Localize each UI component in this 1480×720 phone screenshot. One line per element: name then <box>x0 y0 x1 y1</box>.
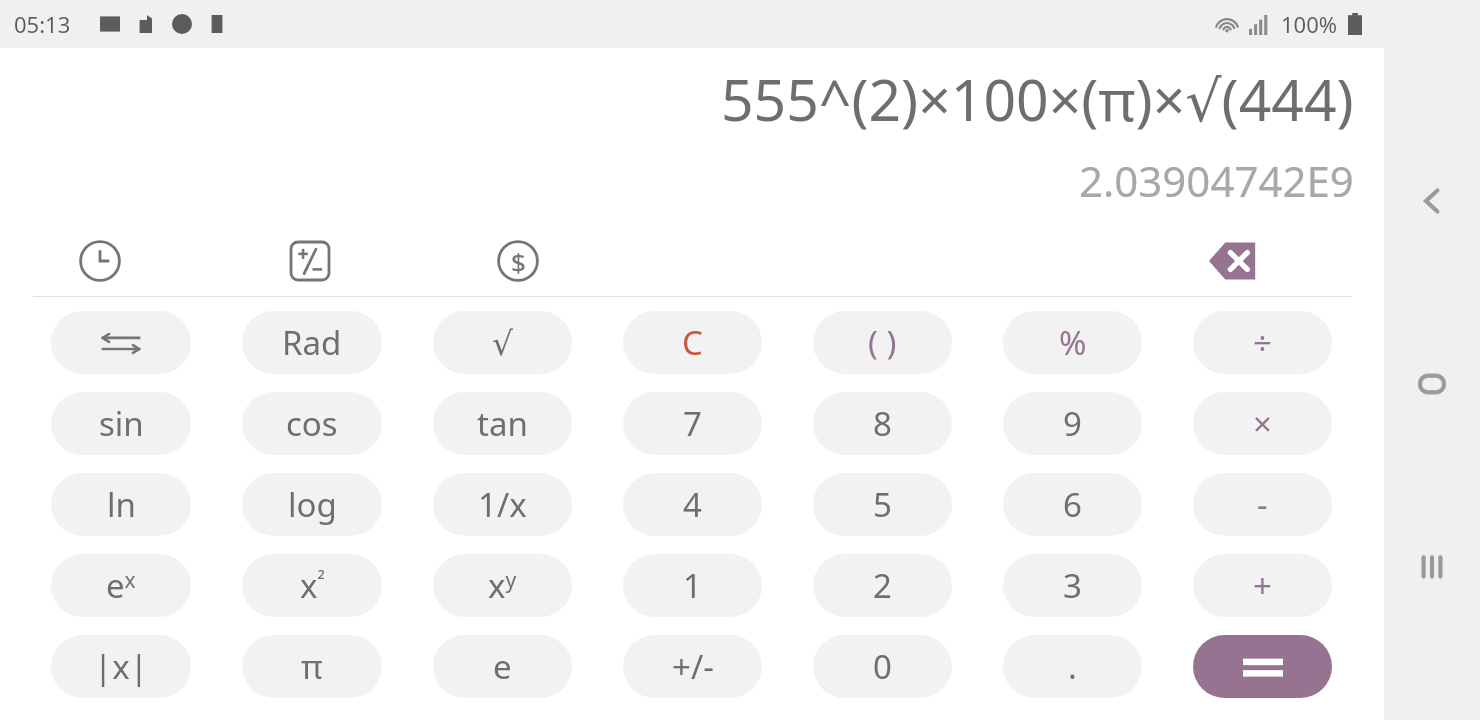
button[interactable]: ex <box>51 554 191 617</box>
staticText: log <box>288 482 337 527</box>
staticText: |x| <box>94 644 148 689</box>
staticText: 05:13 <box>14 9 71 39</box>
staticText: 4 <box>683 482 702 527</box>
button[interactable]: 1/x <box>433 473 572 536</box>
button[interactable]: 0 <box>813 635 952 698</box>
staticText: % <box>1059 320 1087 365</box>
button[interactable]: Back <box>1402 171 1462 231</box>
button[interactable]: |x| <box>51 635 191 698</box>
button[interactable]: π <box>242 635 382 698</box>
staticText: 3 <box>1063 563 1082 608</box>
button[interactable]: Swap <box>51 311 191 374</box>
button[interactable]: Home <box>1402 354 1462 414</box>
staticText: ln <box>107 482 136 527</box>
staticText: x² <box>300 563 325 608</box>
button[interactable]: History <box>72 233 128 289</box>
staticText: + <box>1253 563 1272 608</box>
staticText: tan <box>477 401 528 446</box>
staticText: 0 <box>873 644 892 689</box>
staticText: 6 <box>1063 482 1082 527</box>
button[interactable]: 1 <box>623 554 762 617</box>
button[interactable]: 6 <box>1003 473 1142 536</box>
button[interactable]: 2 <box>813 554 952 617</box>
staticText: . <box>1068 644 1077 689</box>
button[interactable]: × <box>1193 392 1332 455</box>
button[interactable]: e <box>433 635 572 698</box>
button[interactable]: 5 <box>813 473 952 536</box>
staticText: $ <box>511 244 526 279</box>
button[interactable]: tan <box>433 392 572 455</box>
staticText: sin <box>99 401 144 446</box>
staticText: ÷ <box>1253 320 1272 365</box>
staticText: 1/x <box>478 482 527 527</box>
button[interactable]: Fraction <box>282 233 338 289</box>
staticText: cos <box>286 401 338 446</box>
button[interactable]: cos <box>242 392 382 455</box>
button[interactable]: 9 <box>1003 392 1142 455</box>
button[interactable]: 8 <box>813 392 952 455</box>
button[interactable]: 4 <box>623 473 762 536</box>
button[interactable]: 7 <box>623 392 762 455</box>
staticText: π <box>301 644 323 689</box>
staticText: xy <box>488 563 517 608</box>
staticText: 2 <box>873 563 892 608</box>
staticText: 9 <box>1063 401 1082 446</box>
staticText: ex <box>106 563 136 608</box>
staticText: 555^(2)×100×(π)×√(444) <box>721 60 1354 138</box>
staticText: 5 <box>873 482 892 527</box>
button[interactable]: ÷ <box>1193 311 1332 374</box>
button[interactable]: Recent apps <box>1402 537 1462 597</box>
button[interactable]: Backspace <box>1192 233 1264 289</box>
staticText: 100% <box>1281 9 1338 39</box>
staticText: × <box>1253 401 1272 446</box>
staticText: +/- <box>672 644 714 689</box>
button[interactable]: √ <box>433 311 572 374</box>
button[interactable]: sin <box>51 392 191 455</box>
button[interactable]: - <box>1193 473 1332 536</box>
button[interactable]: . <box>1003 635 1142 698</box>
staticText: - <box>1257 482 1268 527</box>
staticText: e <box>493 644 512 689</box>
button[interactable]: log <box>242 473 382 536</box>
staticText: 2.03904742E9 <box>1079 152 1354 209</box>
button[interactable]: Rad <box>242 311 382 374</box>
staticText: 1 <box>683 563 702 608</box>
button[interactable]: % <box>1003 311 1142 374</box>
button[interactable] <box>1193 635 1332 698</box>
staticText: 8 <box>873 401 892 446</box>
button[interactable]: Currency converter <box>490 233 546 289</box>
staticText: C <box>682 320 703 365</box>
button[interactable]: + <box>1193 554 1332 617</box>
button[interactable]: xy <box>433 554 572 617</box>
staticText: √ <box>492 324 514 362</box>
button[interactable]: ln <box>51 473 191 536</box>
staticText: Rad <box>282 320 342 365</box>
button[interactable]: C <box>623 311 762 374</box>
staticText: 7 <box>683 401 702 446</box>
button[interactable]: ( ) <box>813 311 952 374</box>
button[interactable]: 3 <box>1003 554 1142 617</box>
staticText: ( ) <box>868 320 897 365</box>
button[interactable]: x² <box>242 554 382 617</box>
button[interactable]: +/- <box>623 635 762 698</box>
